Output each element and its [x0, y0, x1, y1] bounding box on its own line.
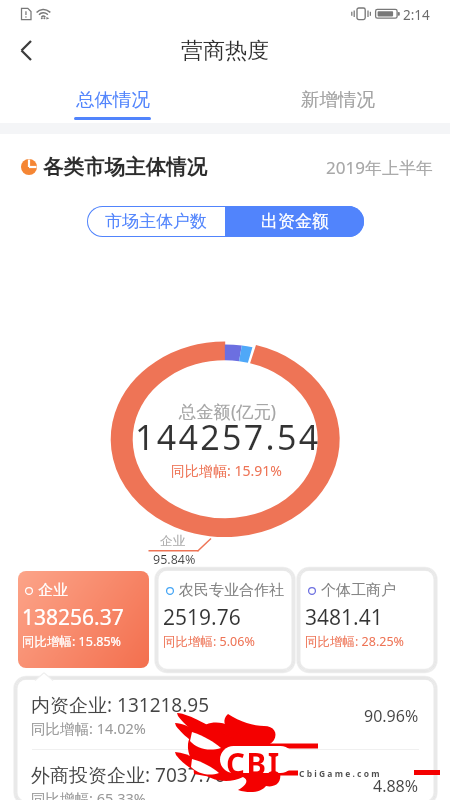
button[interactable]: 农民专业合作社: [159, 571, 291, 668]
staticText: 出资金额: [261, 211, 329, 232]
button[interactable]: 内资企业: 131218.95: [18, 680, 433, 749]
staticText: 同比增幅: 28.25%: [305, 633, 404, 650]
staticText: 企业: [38, 581, 68, 600]
staticText: 144257.54: [135, 414, 321, 460]
staticText: 总金额(亿元): [179, 400, 276, 424]
staticText: 138256.37: [22, 603, 124, 632]
staticText: 营商热度: [181, 37, 269, 65]
button[interactable]: 新增情况: [225, 70, 450, 123]
staticText: 同比增幅: 14.02%: [31, 718, 146, 738]
staticText: 90.96%: [364, 705, 419, 727]
staticText: 同比增幅: 5.06%: [163, 633, 255, 650]
button[interactable]: 企业: [18, 571, 149, 668]
staticText: 市场主体户数: [105, 211, 207, 232]
button[interactable]: 市场主体户数: [87, 206, 225, 237]
staticText: 同比增幅: 15.85%: [22, 633, 121, 650]
staticText: 同比增幅: 65.33%: [31, 788, 146, 800]
button[interactable]: 外商投资企业: 7037.76: [18, 750, 433, 800]
staticText: C b i G a m e . c o m: [299, 768, 380, 780]
staticText: 个体工商户: [321, 581, 396, 600]
staticText: 各类市场主体情况: [43, 154, 207, 180]
staticText: 2:14: [403, 6, 430, 24]
button[interactable]: 总体情况: [0, 70, 225, 123]
staticText: 内资企业: 131218.95: [31, 692, 210, 718]
staticText: 3481.41: [305, 603, 383, 632]
staticText: CBI: [226, 743, 281, 783]
button[interactable]: 个体工商户: [301, 571, 433, 668]
staticText: 2019年上半年: [326, 156, 433, 179]
staticText: 4.88%: [373, 775, 419, 797]
staticText: 新增情况: [301, 88, 375, 111]
staticText: 95.84%: [153, 551, 196, 568]
staticText: 同比增幅: 15.91%: [171, 461, 282, 480]
staticText: 企业: [160, 533, 185, 549]
staticText: 2519.76: [163, 603, 241, 632]
button[interactable]: 出资金额: [225, 206, 364, 237]
button[interactable]: Back: [0, 30, 46, 70]
staticText: 外商投资企业: 7037.76: [31, 762, 226, 788]
staticText: 农民专业合作社: [179, 581, 284, 600]
staticText: 总体情况: [76, 88, 150, 111]
